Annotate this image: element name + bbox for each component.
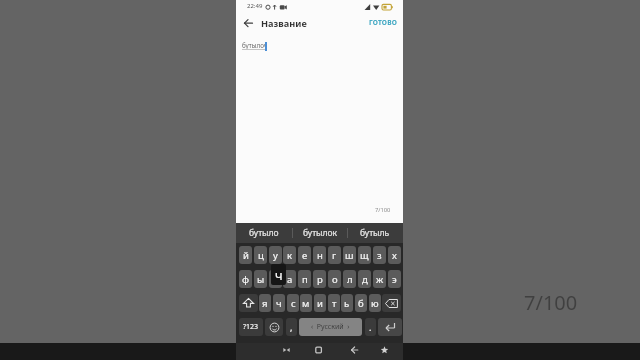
button[interactable]: й bbox=[239, 246, 252, 264]
staticText: з bbox=[377, 249, 382, 262]
staticText: ф bbox=[242, 273, 250, 286]
button[interactable] bbox=[240, 17, 257, 30]
staticText: а bbox=[287, 273, 293, 286]
staticText: ь bbox=[344, 297, 350, 310]
staticText: ГОТОВО bbox=[369, 18, 398, 27]
button[interactable] bbox=[348, 343, 361, 357]
staticText: э bbox=[392, 273, 397, 286]
staticText: ч bbox=[276, 297, 282, 310]
staticText: Название bbox=[261, 17, 307, 30]
button[interactable]: , bbox=[286, 318, 297, 336]
button[interactable]: у bbox=[269, 246, 282, 264]
button[interactable]: н bbox=[313, 246, 326, 264]
button[interactable] bbox=[378, 343, 391, 357]
button[interactable]: ы bbox=[254, 270, 267, 288]
staticText: , bbox=[290, 321, 293, 333]
button[interactable]: д bbox=[358, 270, 371, 288]
button[interactable]: ГОТОВО bbox=[367, 16, 399, 29]
button[interactable]: ч bbox=[273, 294, 285, 312]
staticText: р bbox=[317, 273, 323, 286]
staticText: м bbox=[302, 297, 310, 310]
staticText: б bbox=[358, 297, 364, 310]
button[interactable]: т bbox=[328, 294, 340, 312]
staticText: х bbox=[392, 249, 397, 262]
button[interactable]: щ bbox=[358, 246, 371, 264]
button[interactable]: бутыло bbox=[236, 223, 292, 243]
button[interactable]: бутылок bbox=[292, 223, 348, 243]
button[interactable]: ‹ Русский › bbox=[299, 318, 362, 336]
button[interactable]: ж bbox=[373, 270, 386, 288]
button[interactable] bbox=[265, 318, 283, 336]
button[interactable]: ф bbox=[239, 270, 252, 288]
button[interactable]: ю bbox=[369, 294, 381, 312]
staticText: бутылок bbox=[303, 227, 338, 239]
staticText: и bbox=[317, 297, 323, 310]
button[interactable]: г bbox=[328, 246, 341, 264]
staticText: ?123 bbox=[243, 322, 259, 332]
staticText: т bbox=[332, 297, 337, 310]
button[interactable]: х bbox=[388, 246, 401, 264]
button[interactable]: в bbox=[269, 270, 282, 288]
button[interactable]: ц bbox=[254, 246, 267, 264]
button[interactable]: ь bbox=[341, 294, 353, 312]
staticText: к bbox=[287, 249, 293, 262]
staticText: у bbox=[273, 249, 278, 262]
staticText: ю bbox=[371, 297, 379, 310]
staticText: й bbox=[243, 249, 249, 262]
button[interactable]: б bbox=[355, 294, 367, 312]
button[interactable] bbox=[312, 343, 325, 357]
button[interactable]: и bbox=[314, 294, 326, 312]
button[interactable]: м bbox=[300, 294, 312, 312]
button[interactable]: л bbox=[343, 270, 356, 288]
button[interactable]: е bbox=[298, 246, 311, 264]
staticText: щ bbox=[360, 249, 369, 262]
staticText: в bbox=[273, 273, 279, 286]
button[interactable]: з bbox=[373, 246, 386, 264]
staticText: бутылоч bbox=[242, 41, 268, 50]
button[interactable]: п bbox=[298, 270, 311, 288]
staticText: г bbox=[332, 249, 337, 262]
staticText: . bbox=[369, 321, 372, 333]
button[interactable]: о bbox=[328, 270, 341, 288]
staticText: ‹ Русский › bbox=[311, 322, 350, 332]
button[interactable] bbox=[280, 343, 293, 357]
button[interactable]: р bbox=[313, 270, 326, 288]
staticText: с bbox=[291, 297, 296, 310]
staticText: 7/100 bbox=[524, 289, 578, 316]
button[interactable]: ?123 bbox=[239, 318, 263, 336]
staticText: ж bbox=[376, 273, 384, 286]
button[interactable]: с bbox=[287, 294, 299, 312]
staticText: д bbox=[362, 273, 368, 286]
button[interactable] bbox=[382, 294, 401, 312]
staticText: н bbox=[317, 249, 323, 262]
button[interactable]: я bbox=[259, 294, 271, 312]
staticText: ч bbox=[275, 266, 283, 284]
staticText: бутыль bbox=[360, 227, 390, 239]
staticText: е bbox=[302, 249, 308, 262]
staticText: о bbox=[332, 273, 338, 286]
button[interactable] bbox=[239, 294, 258, 312]
staticText: 22:49 bbox=[247, 2, 263, 10]
staticText: я bbox=[262, 297, 268, 310]
staticText: л bbox=[347, 273, 353, 286]
button[interactable] bbox=[378, 318, 402, 336]
staticText: ш bbox=[345, 249, 354, 262]
button[interactable]: бутыль bbox=[347, 223, 403, 243]
button[interactable]: . bbox=[365, 318, 376, 336]
button[interactable]: а bbox=[283, 270, 296, 288]
staticText: п bbox=[302, 273, 308, 286]
button[interactable]: э bbox=[388, 270, 401, 288]
staticText: 7/100 bbox=[375, 206, 391, 214]
staticText: ц bbox=[258, 249, 264, 262]
staticText: бутыло bbox=[249, 227, 279, 239]
button[interactable]: к bbox=[283, 246, 296, 264]
button[interactable]: ш bbox=[343, 246, 356, 264]
staticText: ы bbox=[257, 273, 265, 286]
